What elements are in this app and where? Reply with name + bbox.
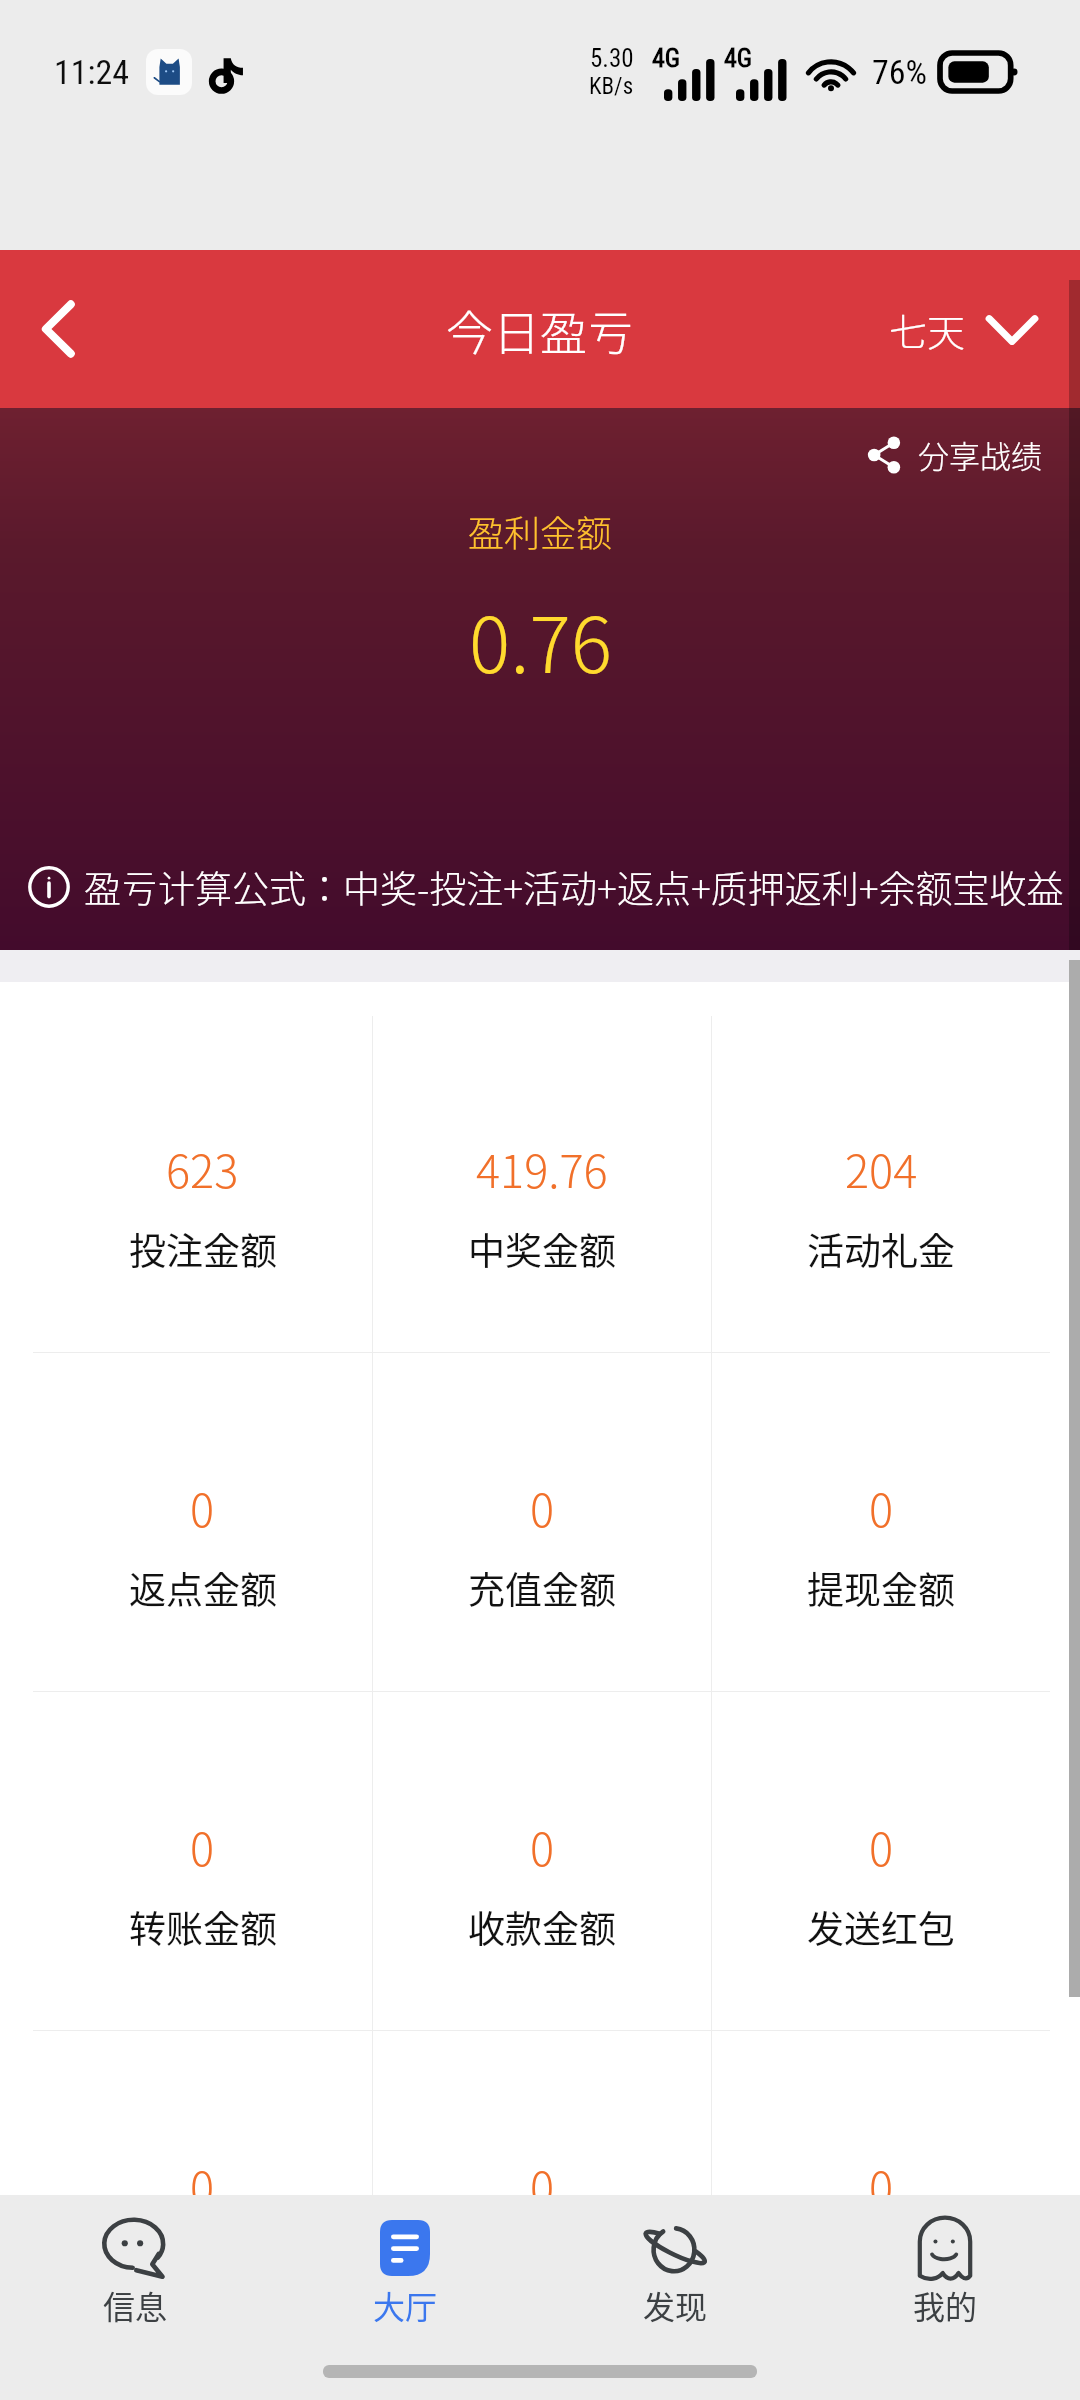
staticText: 信息 <box>103 2282 168 2328</box>
button[interactable]: 0 <box>373 1692 711 2030</box>
button[interactable]: 0 <box>373 1353 711 1691</box>
button[interactable]: 七天 <box>881 286 1046 373</box>
button[interactable]: 0 <box>33 2031 372 2195</box>
staticText: 发现 <box>643 2282 708 2328</box>
button[interactable]: 0 <box>33 1353 372 1691</box>
button[interactable]: Back <box>14 285 102 373</box>
staticText: 活动礼金 <box>807 1222 955 1276</box>
button[interactable]: 分享战绩 <box>861 424 1048 485</box>
staticText: 0 <box>190 1814 215 1879</box>
staticText: 分享战绩 <box>918 432 1042 477</box>
button[interactable]: 发现 <box>540 2195 810 2343</box>
button[interactable]: 0 <box>712 1692 1050 2030</box>
staticText: 返点金额 <box>129 1561 277 1615</box>
button[interactable]: 623 <box>33 1014 372 1352</box>
staticText: 提现金额 <box>807 1561 955 1615</box>
button[interactable]: 0 <box>712 2031 1050 2195</box>
staticText: 0 <box>190 2153 215 2195</box>
button[interactable]: 419.76 <box>373 1014 711 1352</box>
staticText: 转账金额 <box>129 1900 277 1954</box>
staticText: 投注金额 <box>129 1222 277 1276</box>
staticText: 0 <box>530 1814 555 1879</box>
staticText: 盈利金额 <box>468 505 613 557</box>
button[interactable]: 0 <box>712 1353 1050 1691</box>
button[interactable]: 我的 <box>810 2195 1080 2343</box>
staticText: 0.76 <box>469 584 612 695</box>
button[interactable]: 0 <box>33 1692 372 2030</box>
staticText: 0 <box>530 1475 555 1540</box>
staticText: 4G <box>724 43 753 73</box>
staticText: 0 <box>869 1814 894 1879</box>
staticText: 0 <box>869 2153 894 2195</box>
staticText: 11:24 <box>54 52 130 92</box>
staticText: 0 <box>190 1475 215 1540</box>
staticText: 0 <box>530 2153 555 2195</box>
staticText: 盈亏计算公式：中奖-投注+活动+返点+质押返利+余额宝收益 <box>84 860 1064 914</box>
staticText: 76% <box>872 52 928 92</box>
staticText: 623 <box>166 1136 239 1201</box>
staticText: 419.76 <box>476 1136 608 1201</box>
staticText: 0 <box>869 1475 894 1540</box>
staticText: 5.30 <box>590 44 634 73</box>
button[interactable]: 信息 <box>0 2195 270 2343</box>
staticText: 大厅 <box>373 2282 438 2328</box>
staticText: 4G <box>652 43 681 73</box>
button[interactable]: 0 <box>373 2031 711 2195</box>
staticText: 七天 <box>889 302 966 357</box>
staticText: 中奖金额 <box>468 1222 616 1276</box>
button[interactable]: 大厅 <box>270 2195 540 2343</box>
staticText: 我的 <box>913 2282 978 2328</box>
staticText: 充值金额 <box>468 1561 616 1615</box>
staticText: 204 <box>845 1136 918 1201</box>
staticText: 发送红包 <box>807 1900 955 1954</box>
staticText: KB/s <box>589 73 634 100</box>
button[interactable]: 204 <box>712 1014 1050 1352</box>
staticText: 今日盈亏 <box>446 295 634 363</box>
staticText: 收款金额 <box>468 1900 616 1954</box>
